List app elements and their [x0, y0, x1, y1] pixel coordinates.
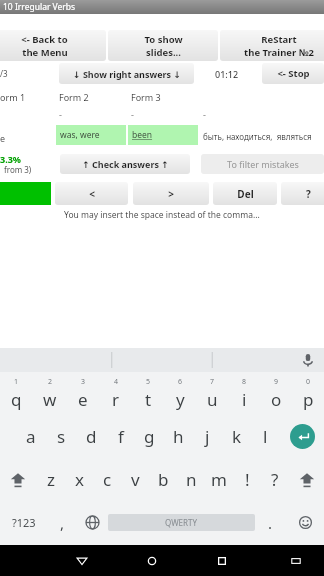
button[interactable]: x [65, 458, 93, 501]
staticText: QWERTY [165, 517, 198, 528]
staticText: 7 [210, 377, 215, 387]
button[interactable]: ! [233, 458, 261, 501]
staticText: x [75, 468, 84, 491]
button[interactable]: 4 [99, 372, 132, 415]
staticText: o [271, 388, 282, 411]
staticText: c [103, 468, 112, 491]
button[interactable]: ↓ Show right answers ↓ [59, 63, 194, 84]
staticText: e [0, 132, 6, 144]
button[interactable]: d [76, 415, 106, 458]
button[interactable]: n [177, 458, 205, 501]
staticText: 01:12 [215, 68, 239, 80]
staticText: l [263, 425, 268, 448]
button[interactable]: ?123 [0, 501, 47, 544]
staticText: , [60, 513, 65, 533]
button[interactable]: l [251, 415, 280, 458]
staticText: n [186, 468, 197, 491]
button[interactable]: Back [70, 549, 94, 573]
staticText: the Menu [22, 46, 68, 59]
button[interactable]: Shift [289, 458, 324, 501]
button[interactable]: , [47, 501, 77, 544]
staticText: <- Stop [277, 67, 310, 80]
staticText: быть, находиться, являться [203, 131, 312, 142]
button[interactable]: c [93, 458, 121, 501]
button[interactable]: 9 [260, 372, 292, 415]
button[interactable]: a [16, 415, 46, 458]
button[interactable]: 5 [132, 372, 164, 415]
staticText: j [205, 425, 210, 448]
staticText: e [78, 388, 88, 411]
staticText: t [145, 388, 152, 411]
button[interactable]: f [106, 415, 135, 458]
button[interactable]: <- Back to [0, 30, 106, 61]
staticText: been [132, 129, 153, 141]
staticText: orm 1 [0, 91, 26, 103]
staticText: q [11, 388, 22, 411]
staticText: ↑ Check answers ↑ [82, 158, 169, 170]
button[interactable]: s [46, 415, 76, 458]
staticText: - [131, 108, 134, 120]
button[interactable]: 3 [66, 372, 99, 415]
button[interactable]: been [128, 125, 198, 145]
staticText: 1 [14, 377, 19, 387]
button[interactable]: 7 [196, 372, 228, 415]
staticText: r [112, 388, 120, 411]
button[interactable]: ↑ Check answers ↑ [60, 154, 190, 174]
staticText: 3 [81, 377, 86, 387]
staticText: You may insert the space instead of the … [64, 209, 260, 221]
button[interactable]: j [193, 415, 222, 458]
staticText: To show [144, 33, 183, 46]
button[interactable]: Change language [77, 501, 108, 544]
staticText: ↓ Show right answers ↓ [73, 68, 181, 80]
button[interactable]: Recents [210, 549, 234, 573]
button[interactable]: Enter [280, 415, 324, 458]
button[interactable]: To show [108, 30, 218, 61]
staticText: f [118, 425, 124, 448]
button[interactable]: ? [281, 182, 324, 205]
staticText: was, were [60, 129, 100, 141]
button[interactable]: 1 [0, 372, 33, 415]
button[interactable]: Hide keyboard [284, 549, 308, 573]
staticText: i [242, 388, 247, 411]
button[interactable]: QWERTY [108, 514, 255, 531]
staticText: ? [306, 187, 311, 201]
button[interactable]: . [255, 501, 286, 544]
staticText: y [176, 388, 185, 411]
staticText: m [211, 468, 227, 491]
button[interactable]: 2 [33, 372, 66, 415]
button[interactable]: g [135, 415, 164, 458]
staticText: Del [237, 187, 254, 201]
button[interactable]: < [55, 182, 128, 205]
button[interactable]: > [133, 182, 209, 205]
staticText: g [144, 425, 155, 448]
button[interactable]: h [164, 415, 193, 458]
staticText: a [26, 425, 36, 448]
staticText: h [173, 425, 184, 448]
button[interactable]: 8 [228, 372, 260, 415]
staticText: s [57, 425, 66, 448]
staticText: ! [245, 468, 250, 491]
staticText: 8 [242, 377, 247, 387]
button[interactable]: ReStart [220, 30, 324, 61]
staticText: 9 [274, 377, 279, 387]
button[interactable]: Del [213, 182, 277, 205]
staticText: p [303, 388, 314, 411]
button[interactable]: Shift [0, 458, 36, 501]
staticText: . [268, 513, 273, 533]
staticText: 4 [114, 377, 119, 387]
staticText: Form 3 [131, 91, 161, 103]
button[interactable]: Emoji [286, 501, 324, 544]
button[interactable]: 6 [164, 372, 196, 415]
button[interactable]: z [36, 458, 65, 501]
button[interactable]: Home [140, 549, 164, 573]
button[interactable]: was, were [56, 125, 126, 145]
button[interactable]: v [121, 458, 149, 501]
button[interactable]: b [149, 458, 177, 501]
button[interactable]: ? [261, 458, 289, 501]
button[interactable]: 0 [292, 372, 324, 415]
button[interactable]: To filter mistakes [201, 154, 324, 174]
button[interactable]: k [222, 415, 251, 458]
button[interactable]: <- Stop [262, 63, 324, 84]
button[interactable]: m [205, 458, 233, 501]
button[interactable]: Voice input [298, 350, 318, 370]
